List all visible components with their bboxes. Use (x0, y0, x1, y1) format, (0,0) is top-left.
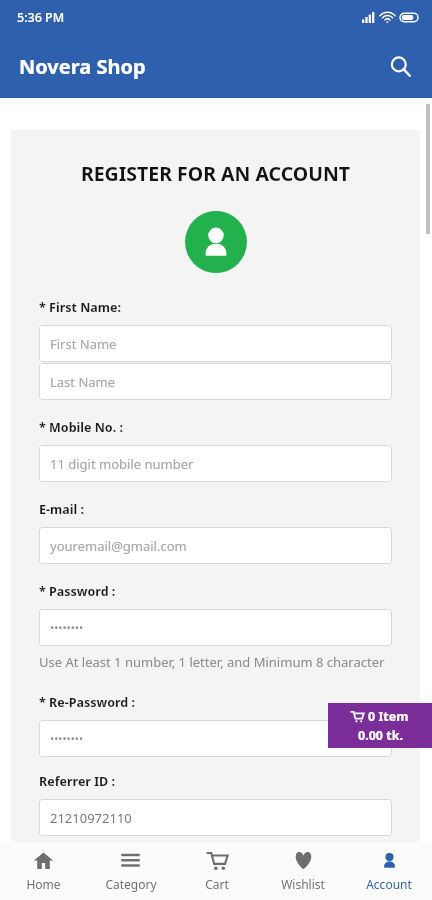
button[interactable]: Category (87, 842, 174, 892)
staticText: Novera Shop (19, 53, 146, 80)
staticText: First Name (50, 335, 117, 353)
button[interactable]: Search (378, 44, 422, 88)
staticText: * Mobile No. : (39, 419, 123, 436)
button[interactable]: youremail@gmail.com (39, 527, 392, 564)
button[interactable]: Account (346, 842, 432, 892)
staticText: Category (105, 876, 157, 892)
button[interactable]: Last Name (39, 363, 392, 400)
button[interactable]: 21210972110 (39, 799, 392, 836)
staticText: E-mail : (39, 501, 84, 518)
staticText: Referrer ID : (39, 773, 115, 790)
staticText: 5:36 PM (17, 9, 65, 26)
staticText: Account (366, 876, 412, 892)
button[interactable]: Account avatar (185, 211, 247, 273)
button[interactable]: 0 Item (328, 703, 432, 748)
staticText: 0.00 tk. (358, 727, 403, 744)
staticText: * First Name: (39, 299, 121, 316)
staticText: REGISTER FOR AN ACCOUNT (39, 160, 392, 187)
staticText: * Password : (39, 583, 116, 600)
button[interactable]: First Name (39, 325, 392, 362)
staticText: •••••••• (50, 620, 84, 635)
staticText: Wishlist (281, 876, 325, 892)
button[interactable]: •••••••• (39, 720, 392, 757)
staticText: * Re-Password : (39, 694, 136, 711)
button[interactable]: Cart (174, 842, 260, 892)
button[interactable]: Home (0, 842, 87, 892)
staticText: 11 digit mobile number (50, 455, 194, 473)
staticText: Use At least 1 number, 1 letter, and Min… (39, 653, 385, 671)
button[interactable]: Wishlist (260, 842, 346, 892)
staticText: Last Name (50, 373, 116, 391)
staticText: •••••••• (50, 731, 84, 746)
staticText: Cart (205, 876, 229, 892)
button[interactable]: •••••••• (39, 609, 392, 646)
staticText: Home (26, 876, 61, 892)
staticText: 0 Item (368, 708, 409, 725)
staticText: 21210972110 (50, 809, 132, 827)
staticText: youremail@gmail.com (50, 537, 187, 555)
button[interactable]: 11 digit mobile number (39, 445, 392, 482)
